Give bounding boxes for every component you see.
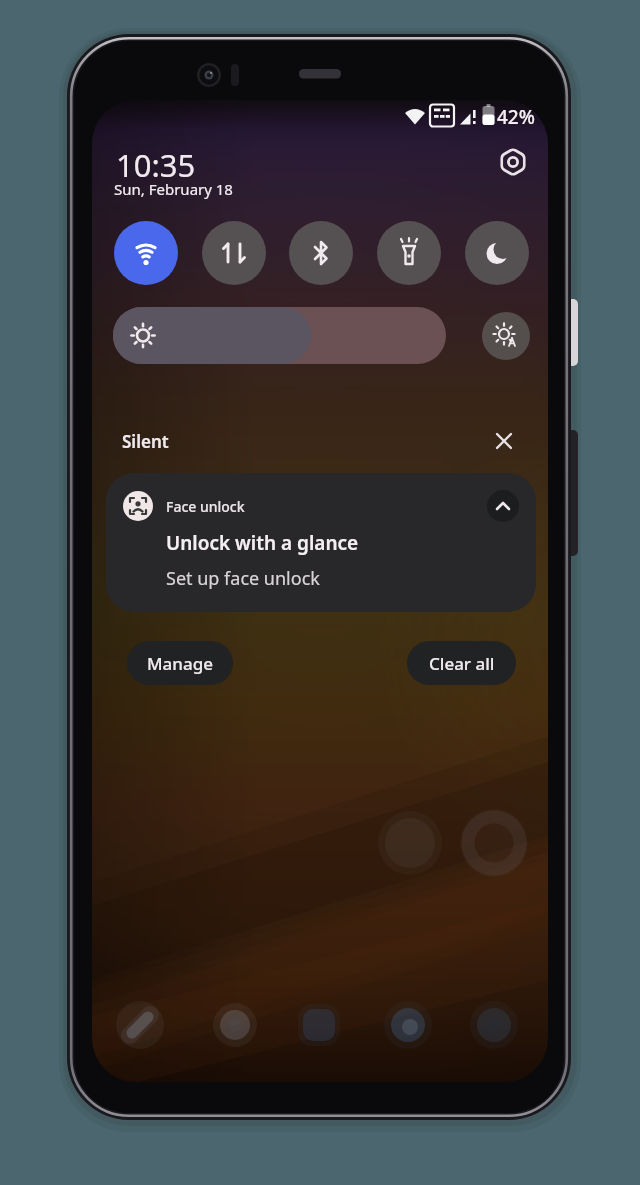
button[interactable]: Face unlock (106, 473, 536, 612)
button[interactable] (490, 427, 518, 455)
button[interactable] (289, 221, 353, 285)
button[interactable]: Clear all (407, 641, 516, 685)
staticText: Clear all (429, 652, 495, 675)
staticText: Set up face unlock (166, 566, 320, 591)
staticText: 10:35 (116, 144, 196, 186)
staticText: Unlock with a glance (166, 530, 359, 556)
button[interactable] (465, 221, 529, 285)
button[interactable] (487, 490, 519, 522)
staticText: 42% (497, 104, 535, 130)
staticText: Manage (147, 652, 214, 675)
button[interactable] (377, 221, 441, 285)
staticText: Sun, February 18 (114, 179, 233, 199)
button[interactable]: Manage (127, 641, 233, 685)
button[interactable] (482, 312, 530, 360)
button[interactable] (113, 307, 446, 364)
staticText: Face unlock (166, 497, 245, 516)
staticText: Silent (122, 430, 169, 453)
button[interactable] (114, 221, 178, 285)
button[interactable] (495, 144, 531, 180)
button[interactable] (202, 221, 266, 285)
